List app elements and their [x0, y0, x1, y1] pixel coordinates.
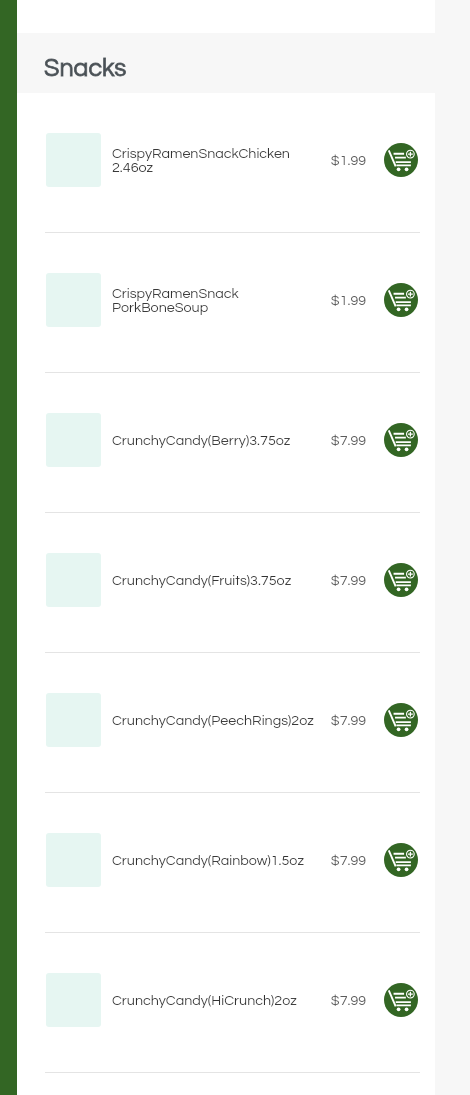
- staticText: CrispyRamenSnackChicken 2.46oz: [112, 146, 325, 175]
- button[interactable]: Add to cart: [384, 143, 418, 177]
- button[interactable]: CrunchyCandy(HiCrunch)2oz: [0, 933, 435, 1067]
- button[interactable]: CrispyRamenSnackChicken 2.46oz: [0, 93, 435, 227]
- button[interactable]: Add to cart: [384, 983, 418, 1017]
- button[interactable]: Add to cart: [384, 703, 418, 737]
- staticText: $7.99: [325, 433, 372, 448]
- button[interactable]: CrunchyCandy(Berry)3.75oz: [0, 373, 435, 507]
- button[interactable]: Add to cart: [384, 283, 418, 317]
- staticText: $1.99: [325, 153, 372, 168]
- staticText: Snacks: [44, 55, 127, 81]
- staticText: CrunchyCandy(HiCrunch)2oz: [112, 993, 325, 1008]
- button[interactable]: Add to cart: [384, 563, 418, 597]
- staticText: $7.99: [325, 993, 372, 1008]
- staticText: $7.99: [325, 713, 372, 728]
- button[interactable]: CrispyRamenSnack PorkBoneSoup: [0, 233, 435, 367]
- staticText: CrispyRamenSnack PorkBoneSoup: [112, 286, 325, 315]
- button[interactable]: CrunchyCandy(Rainbow)1.5oz: [0, 793, 435, 927]
- staticText: $1.99: [325, 293, 372, 308]
- button[interactable]: Add to cart: [384, 843, 418, 877]
- button[interactable]: Snacks: [0, 33, 435, 93]
- staticText: CrunchyCandy(Rainbow)1.5oz: [112, 853, 325, 868]
- staticText: Snacks: [44, 55, 127, 81]
- button[interactable]: CrunchyCandy(PeechRings)2oz: [0, 653, 435, 787]
- staticText: CrunchyCandy(PeechRings)2oz: [112, 713, 325, 728]
- staticText: $7.99: [325, 853, 372, 868]
- button[interactable]: Add to cart: [384, 423, 418, 457]
- staticText: CrunchyCandy(Berry)3.75oz: [112, 433, 325, 448]
- staticText: CrunchyCandy(Fruits)3.75oz: [112, 573, 325, 588]
- staticText: $7.99: [325, 573, 372, 588]
- button[interactable]: CrunchyCandy(Fruits)3.75oz: [0, 513, 435, 647]
